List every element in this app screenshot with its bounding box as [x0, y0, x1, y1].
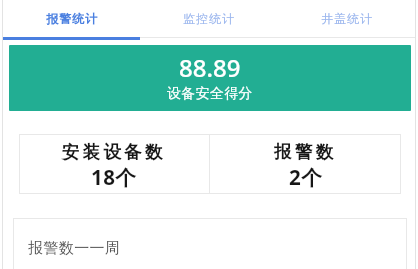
staticText: 2个 — [289, 163, 323, 191]
button[interactable]: 报警数 — [210, 134, 401, 194]
staticText: 报警数一一周 — [28, 239, 121, 258]
staticText: 18个 — [91, 163, 137, 191]
button[interactable]: 报警数一一周 — [13, 218, 407, 269]
button[interactable]: 井盖统计 — [278, 0, 416, 37]
staticText: 监控统计 — [183, 11, 235, 26]
staticText: 88.89 — [179, 51, 241, 84]
staticText: 井盖统计 — [321, 11, 373, 26]
staticText: 安装设备数 — [62, 141, 166, 163]
staticText: 设备安全得分 — [167, 85, 253, 103]
button[interactable]: 监控统计 — [140, 0, 278, 37]
staticText: 报警数 — [274, 141, 337, 163]
staticText: 报警统计 — [46, 11, 98, 26]
button[interactable]: 88.89 — [9, 45, 411, 111]
button[interactable]: 报警统计 — [3, 0, 140, 37]
button[interactable]: 安装设备数 — [19, 134, 209, 194]
